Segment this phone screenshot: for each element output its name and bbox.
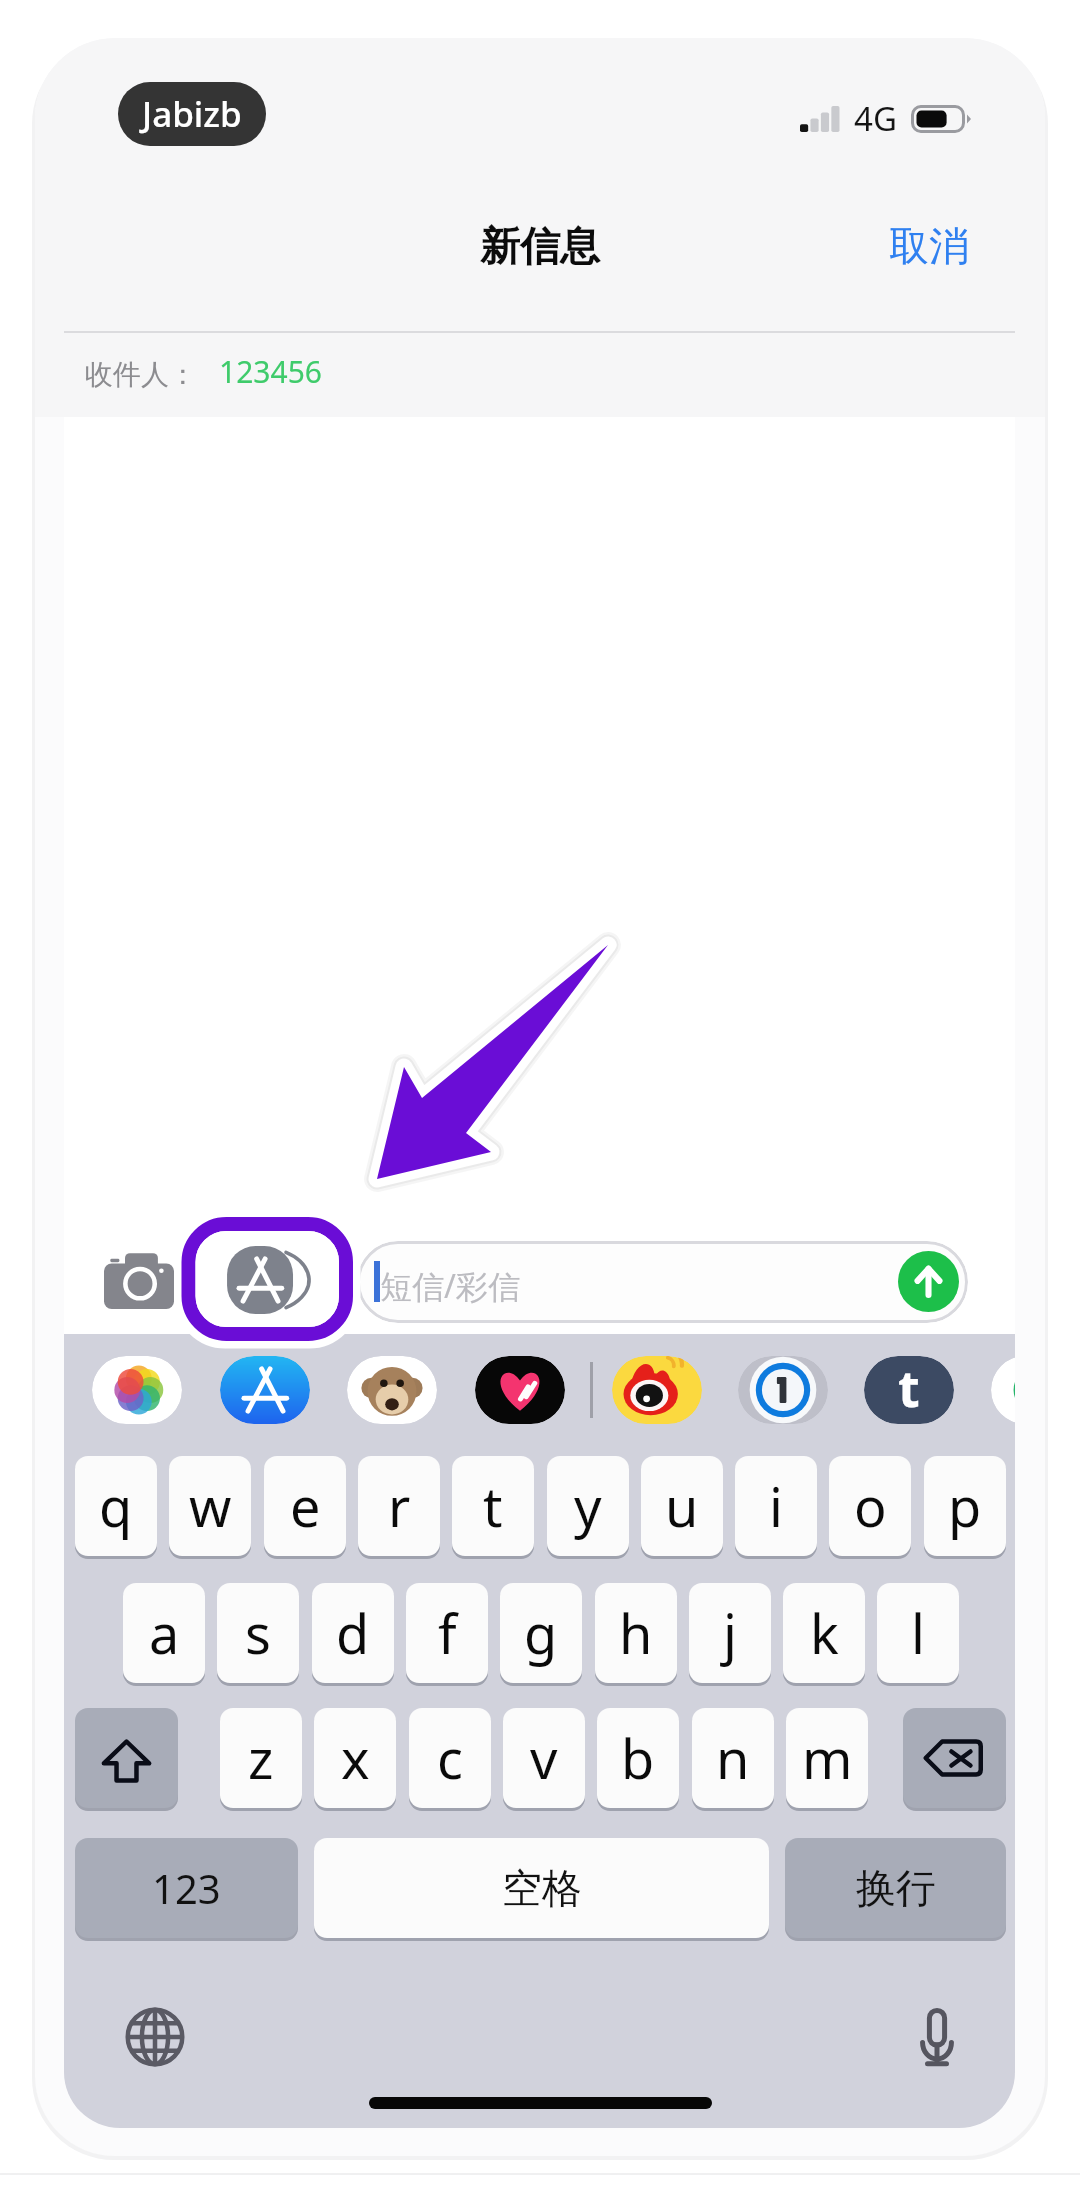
- button[interactable]: Health: [475, 1356, 565, 1424]
- button[interactable]: b: [597, 1708, 679, 1808]
- button[interactable]: p: [924, 1456, 1006, 1556]
- staticText: d: [336, 1596, 370, 1670]
- staticText: j: [723, 1596, 737, 1670]
- button[interactable]: Jabizb: [118, 82, 266, 146]
- button[interactable]: i: [735, 1456, 817, 1556]
- button[interactable]: x: [314, 1708, 396, 1808]
- button[interactable]: w: [169, 1456, 251, 1556]
- button[interactable]: h: [595, 1583, 677, 1683]
- button[interactable]: o: [829, 1456, 911, 1556]
- button[interactable]: f: [406, 1583, 488, 1683]
- staticText: 4G: [854, 96, 897, 141]
- staticText: v: [530, 1721, 558, 1795]
- button[interactable]: 空格: [314, 1838, 769, 1938]
- staticText: f: [438, 1596, 457, 1670]
- button[interactable]: More: [991, 1356, 1015, 1424]
- staticText: x: [341, 1721, 370, 1795]
- button[interactable]: e: [264, 1456, 346, 1556]
- button[interactable]: c: [409, 1708, 491, 1808]
- button[interactable]: Change keyboard: [124, 2006, 186, 2068]
- staticText: i: [769, 1469, 783, 1543]
- button[interactable]: 取消: [883, 215, 975, 277]
- staticText: 收件人：: [85, 357, 197, 392]
- button[interactable]: Shift: [75, 1708, 178, 1808]
- staticText: k: [810, 1596, 839, 1670]
- staticText: m: [802, 1721, 853, 1795]
- staticText: h: [619, 1596, 653, 1670]
- staticText: u: [665, 1469, 699, 1543]
- staticText: t: [898, 1356, 920, 1422]
- button[interactable]: d: [312, 1583, 394, 1683]
- button[interactable]: a: [123, 1583, 205, 1683]
- button[interactable]: g: [500, 1583, 582, 1683]
- staticText: r: [388, 1469, 411, 1543]
- staticText: 换行: [856, 1863, 936, 1913]
- button[interactable]: s: [217, 1583, 299, 1683]
- staticText: g: [524, 1596, 558, 1670]
- button[interactable]: Memoji: [347, 1356, 437, 1424]
- button[interactable]: r: [358, 1456, 440, 1556]
- button[interactable]: Send: [898, 1251, 959, 1312]
- staticText: w: [189, 1469, 232, 1543]
- staticText: 短信/彩信: [380, 1264, 520, 1308]
- button[interactable]: k: [783, 1583, 865, 1683]
- staticText: Jabizb: [142, 90, 242, 138]
- button[interactable]: v: [503, 1708, 585, 1808]
- staticText: 123456: [219, 351, 322, 392]
- button[interactable]: 1Password: [738, 1356, 828, 1424]
- button[interactable]: m: [786, 1708, 868, 1808]
- button[interactable]: 123: [75, 1838, 298, 1938]
- staticText: o: [854, 1469, 887, 1543]
- staticText: y: [574, 1469, 602, 1543]
- staticText: 取消: [889, 221, 969, 271]
- button[interactable]: Tumblr: [864, 1356, 954, 1424]
- button[interactable]: t: [452, 1456, 534, 1556]
- staticText: c: [437, 1721, 463, 1795]
- staticText: q: [99, 1469, 133, 1543]
- staticText: 空格: [502, 1863, 582, 1913]
- button[interactable]: 短信/彩信: [357, 1241, 968, 1323]
- button[interactable]: Weibo: [612, 1356, 702, 1424]
- button[interactable]: j: [689, 1583, 771, 1683]
- staticText: s: [245, 1596, 271, 1670]
- button[interactable]: App Store: [224, 1246, 312, 1314]
- staticText: p: [948, 1469, 982, 1543]
- staticText: e: [290, 1469, 321, 1543]
- staticText: a: [149, 1596, 180, 1670]
- staticText: b: [621, 1721, 655, 1795]
- button[interactable]: n: [692, 1708, 774, 1808]
- button[interactable]: l: [877, 1583, 959, 1683]
- button[interactable]: u: [641, 1456, 723, 1556]
- staticText: 新信息: [480, 221, 600, 271]
- button[interactable]: Delete: [903, 1708, 1006, 1808]
- button[interactable]: Camera: [104, 1252, 174, 1309]
- button[interactable]: z: [220, 1708, 302, 1808]
- staticText: z: [248, 1721, 274, 1795]
- button[interactable]: y: [547, 1456, 629, 1556]
- button[interactable]: Dictation: [918, 2008, 956, 2068]
- button[interactable]: Photos: [92, 1356, 182, 1424]
- staticText: t: [483, 1469, 503, 1543]
- button[interactable]: q: [75, 1456, 157, 1556]
- button[interactable]: App Store: [220, 1356, 310, 1424]
- staticText: 123: [152, 1861, 221, 1915]
- staticText: l: [911, 1596, 925, 1670]
- button[interactable]: 换行: [785, 1838, 1006, 1938]
- staticText: n: [716, 1721, 750, 1795]
